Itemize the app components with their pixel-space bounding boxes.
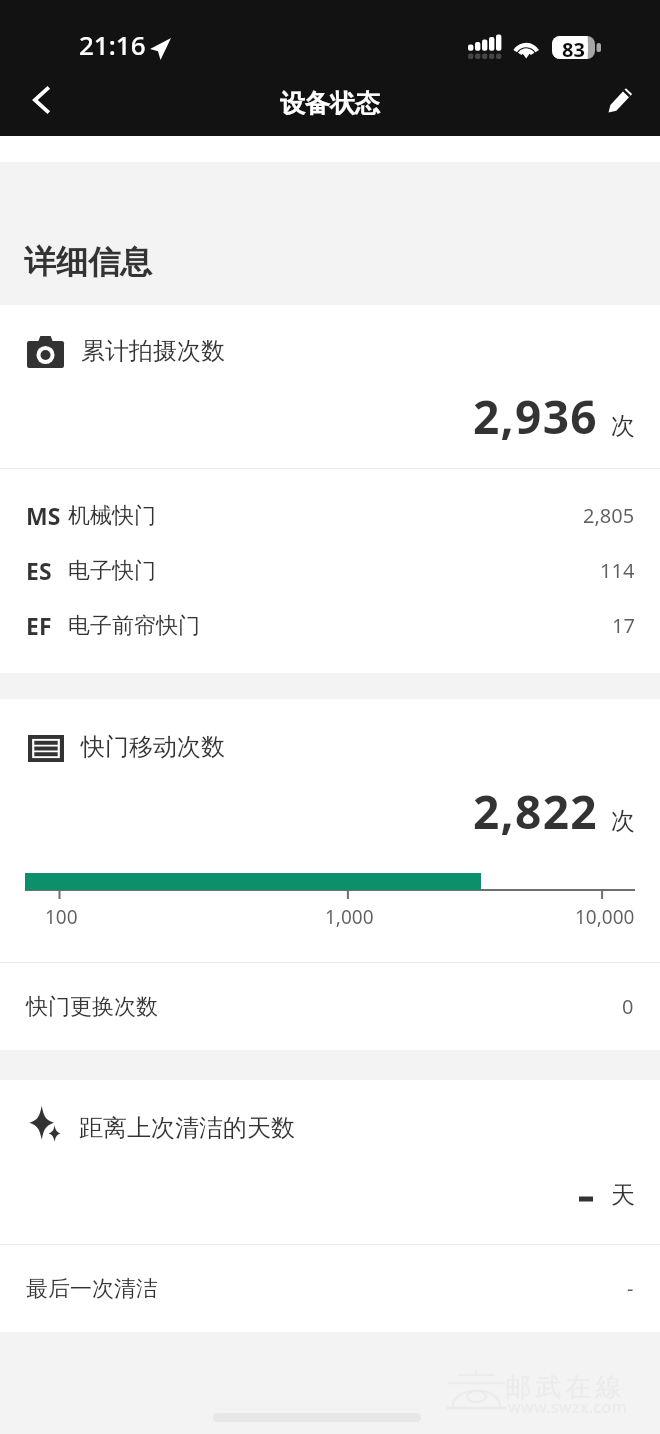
- button[interactable]: Back: [0, 70, 83, 136]
- staticText: 最后一次清洁: [26, 1275, 158, 1303]
- staticText: 2,805: [583, 502, 635, 529]
- staticText: 21:16: [79, 27, 146, 62]
- staticText: 快门移动次数: [81, 732, 225, 762]
- staticText: ES: [26, 555, 52, 586]
- button[interactable]: EF: [0, 598, 660, 653]
- button[interactable]: Edit: [581, 70, 660, 136]
- staticText: 次: [611, 806, 635, 836]
- staticText: -: [627, 1275, 634, 1302]
- staticText: 机械快门: [68, 502, 156, 530]
- staticText: 天: [611, 1180, 635, 1210]
- staticText: 2,822: [473, 780, 598, 843]
- button[interactable]: 快门更换次数: [0, 963, 660, 1050]
- staticText: 详细信息: [24, 242, 152, 282]
- staticText: 距离上次清洁的天数: [79, 1113, 295, 1143]
- button[interactable]: 最后一次清洁: [0, 1245, 660, 1332]
- staticText: 10,000: [575, 904, 635, 930]
- staticText: 次: [611, 411, 635, 441]
- staticText: 1,000: [325, 904, 374, 930]
- staticText: 0: [622, 993, 634, 1020]
- staticText: 电子快门: [68, 557, 156, 585]
- staticText: 83: [562, 36, 585, 59]
- staticText: 100: [45, 904, 78, 930]
- staticText: 17: [612, 612, 635, 639]
- staticText: 2,936: [473, 385, 598, 448]
- staticText: 114: [600, 557, 635, 584]
- button[interactable]: MS: [0, 488, 660, 543]
- staticText: 电子前帘快门: [68, 612, 200, 640]
- staticText: MS: [26, 500, 61, 531]
- staticText: 快门更换次数: [26, 993, 158, 1021]
- staticText: 累计拍摄次数: [81, 336, 225, 366]
- staticText: EF: [26, 610, 52, 641]
- staticText: 设备状态: [280, 88, 380, 119]
- button[interactable]: ES: [0, 543, 660, 598]
